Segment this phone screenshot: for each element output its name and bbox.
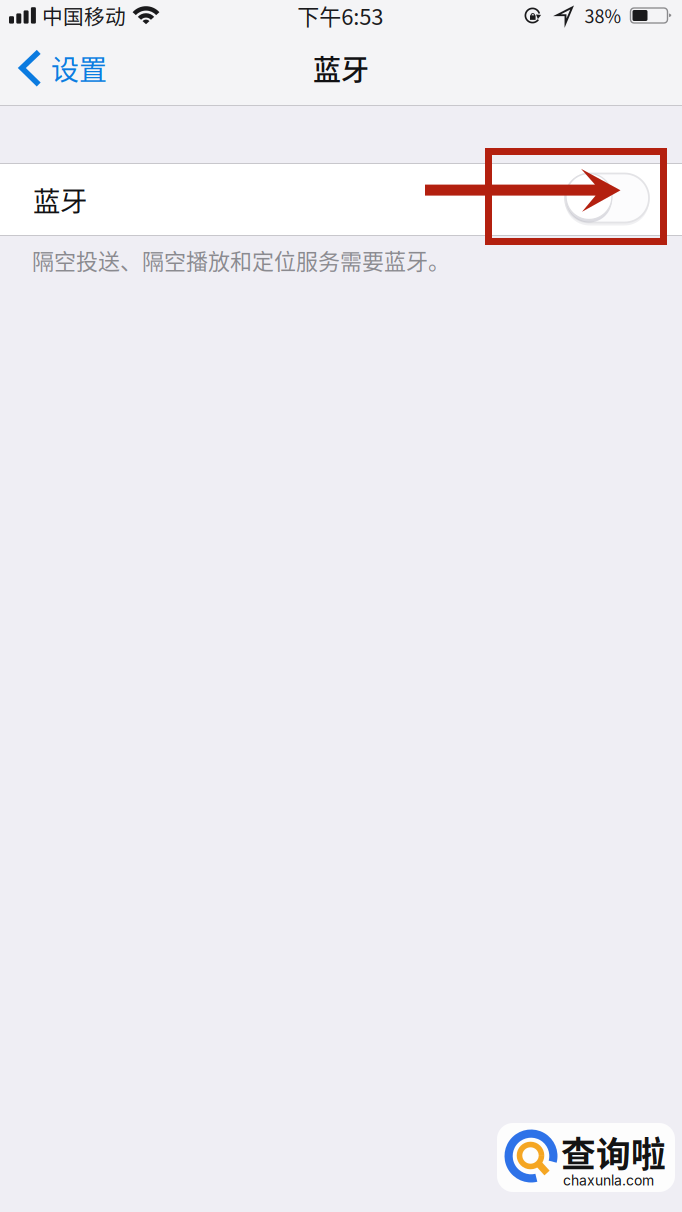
staticText: 隔空投送、隔空播放和定位服务需要蓝牙。: [32, 244, 450, 276]
staticText: 蓝牙: [313, 48, 369, 88]
staticText: chaxunla.com: [563, 1172, 654, 1189]
button[interactable]: 蓝牙: [565, 172, 682, 226]
staticText: 38%: [584, 2, 621, 29]
staticText: 中国移动: [42, 0, 126, 30]
staticText: 查询啦: [561, 1127, 666, 1177]
staticText: 下午6:53: [297, 0, 383, 31]
staticText: 设置: [51, 48, 107, 88]
button[interactable]: 蓝牙: [0, 164, 682, 235]
button[interactable]: 设置: [0, 31, 121, 105]
staticText: 蓝牙: [33, 180, 87, 219]
